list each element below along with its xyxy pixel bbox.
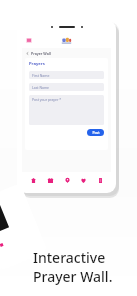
staticText: Prayer Wall. bbox=[33, 267, 113, 286]
staticText: Last Name bbox=[32, 85, 49, 90]
staticText: First Name bbox=[32, 73, 50, 78]
staticText: Interactive bbox=[33, 248, 106, 267]
button[interactable]: Prayer bbox=[77, 173, 89, 187]
button[interactable]: App logo bbox=[60, 37, 73, 45]
button[interactable]: Post bbox=[87, 129, 104, 136]
staticText: Post your prayer * bbox=[32, 97, 62, 102]
button[interactable]: Home bbox=[27, 173, 39, 187]
staticText: Prayers bbox=[29, 61, 45, 67]
button[interactable]: Locations bbox=[61, 173, 73, 187]
staticText: Prayer Wall bbox=[31, 51, 51, 56]
button[interactable]: Menu bbox=[26, 38, 32, 43]
button[interactable]: Post your prayer * bbox=[29, 95, 104, 125]
button[interactable]: First Name bbox=[29, 71, 104, 79]
button[interactable]: Last Name bbox=[29, 83, 104, 91]
button[interactable]: Events bbox=[44, 173, 56, 187]
button[interactable]: More bbox=[94, 173, 106, 187]
staticText: Post bbox=[92, 130, 100, 135]
